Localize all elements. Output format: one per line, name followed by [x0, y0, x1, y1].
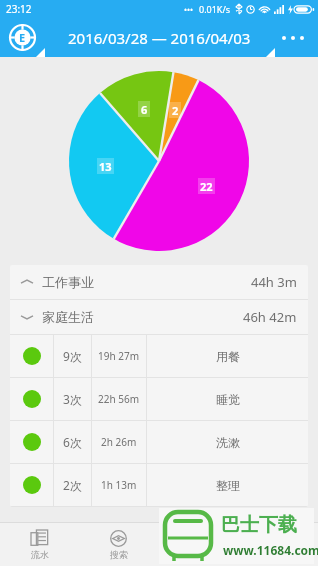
- button[interactable]: 6次: [10, 421, 308, 463]
- staticText: 13: [99, 159, 112, 174]
- staticText: 今天: [189, 549, 207, 560]
- staticText: 搜索: [110, 549, 128, 560]
- button[interactable]: 9次: [10, 335, 308, 377]
- staticText: 22: [200, 179, 213, 194]
- staticText: 1h 13m: [101, 478, 137, 492]
- staticText: 流水: [31, 549, 49, 560]
- staticText: 2h 26m: [101, 435, 137, 449]
- staticText: 6次: [63, 434, 82, 450]
- staticText: 用餐: [216, 349, 240, 364]
- staticText: 家庭生活: [42, 309, 94, 325]
- staticText: 6: [141, 102, 148, 117]
- staticText: E: [19, 30, 26, 45]
- staticText: 2016/03/28 — 2016/04/03: [68, 28, 251, 48]
- staticText: 44h 3m: [251, 273, 297, 291]
- button[interactable]: 家庭生活: [10, 300, 308, 334]
- staticText: 22h 56m: [98, 392, 140, 406]
- staticText: 19h 27m: [98, 349, 140, 363]
- staticText: 46h 42m: [243, 308, 297, 326]
- staticText: 睡觉: [216, 392, 240, 407]
- button[interactable]: 2次: [10, 464, 308, 506]
- button[interactable]: More options: [275, 22, 311, 54]
- staticText: 整理: [216, 478, 240, 493]
- staticText: www.11684.com: [223, 542, 318, 558]
- staticText: 3次: [63, 391, 82, 407]
- staticText: 0.01K/s: [199, 3, 231, 15]
- button[interactable]: 3次: [10, 378, 308, 420]
- staticText: 工作事业: [42, 274, 94, 290]
- button[interactable]: App logo menu: [9, 24, 36, 51]
- staticText: 2次: [63, 477, 82, 493]
- button[interactable]: 搜索: [79, 523, 158, 566]
- staticText: 9次: [63, 348, 82, 364]
- button[interactable]: 工作事业: [10, 265, 308, 299]
- staticText: •••: [184, 4, 194, 15]
- button[interactable]: 今天: [158, 523, 238, 566]
- staticText: 2: [172, 103, 179, 118]
- button[interactable]: 流水: [0, 523, 79, 566]
- staticText: 巴士下载: [221, 513, 297, 537]
- staticText: 洗漱: [216, 435, 240, 450]
- staticText: 23:12: [6, 2, 32, 16]
